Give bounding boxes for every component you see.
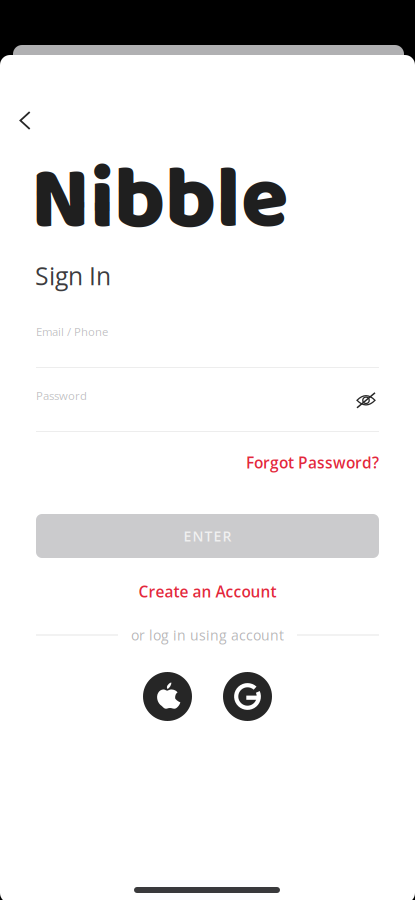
button[interactable]: ENTER: [36, 514, 379, 558]
staticText: Email / Phone: [36, 324, 108, 339]
button[interactable]: Show password: [356, 392, 376, 409]
staticText: Nibble: [31, 132, 289, 271]
button[interactable]: Forgot Password?: [246, 445, 379, 480]
button[interactable]: Create an Account: [138, 574, 276, 609]
staticText: Forgot Password?: [246, 452, 379, 473]
button[interactable]: Sign in with Google: [223, 672, 272, 721]
staticText: Create an Account: [138, 581, 276, 602]
staticText: or log in using account: [131, 625, 284, 645]
button[interactable]: Back: [0, 98, 47, 143]
button[interactable]: Sign in with Apple: [143, 672, 192, 721]
staticText: ENTER: [183, 526, 231, 546]
staticText: Sign In: [35, 259, 111, 293]
staticText: Password: [36, 388, 87, 403]
